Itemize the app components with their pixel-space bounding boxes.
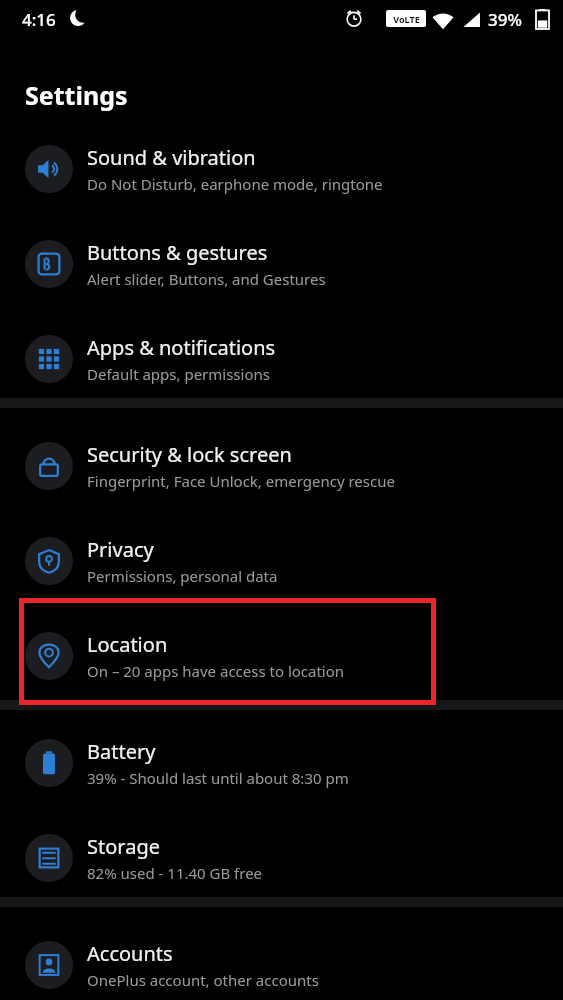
staticText: Buttons & gestures [87, 239, 268, 266]
staticText: VoLTE [393, 13, 420, 25]
button[interactable]: Storage [0, 810, 563, 905]
button[interactable]: Battery [0, 715, 563, 810]
staticText: Apps & notifications [87, 334, 276, 361]
staticText: Security & lock screen [87, 441, 292, 468]
button[interactable]: Privacy [0, 513, 563, 608]
staticText: 39% - Should last until about 8:30 pm [87, 768, 349, 788]
staticText: Permissions, personal data [87, 566, 278, 586]
button[interactable]: Location [0, 608, 563, 703]
staticText: Storage [87, 833, 160, 860]
staticText: Accounts [87, 940, 173, 967]
staticText: Battery [87, 738, 156, 765]
staticText: Sound & vibration [87, 144, 256, 171]
staticText: Do Not Disturb, earphone mode, ringtone [87, 174, 383, 194]
button[interactable]: Accounts [0, 917, 563, 1000]
staticText: Location [87, 631, 168, 658]
button[interactable]: Sound & vibration [0, 121, 563, 216]
staticText: Alert slider, Buttons, and Gestures [87, 269, 326, 289]
staticText: 4:16 [22, 8, 56, 31]
staticText: Privacy [87, 536, 154, 563]
staticText: 39% [488, 8, 522, 31]
staticText: Fingerprint, Face Unlock, emergency resc… [87, 471, 395, 491]
staticText: Settings [25, 78, 128, 112]
staticText: OnePlus account, other accounts [87, 970, 319, 990]
button[interactable]: Apps & notifications [0, 311, 563, 406]
staticText: On – 20 apps have access to location [87, 661, 345, 681]
button[interactable]: Buttons & gestures [0, 216, 563, 311]
button[interactable]: Security & lock screen [0, 418, 563, 513]
staticText: 82% used - 11.40 GB free [87, 863, 263, 883]
staticText: Default apps, permissions [87, 364, 270, 384]
